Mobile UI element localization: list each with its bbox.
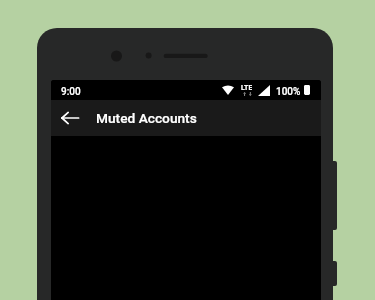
button[interactable]: Back [51,100,88,136]
staticText: LTE [241,84,252,92]
staticText: 100% [276,86,301,98]
staticText: 9:00 [61,86,81,98]
staticText: Muted Accounts [96,110,197,126]
